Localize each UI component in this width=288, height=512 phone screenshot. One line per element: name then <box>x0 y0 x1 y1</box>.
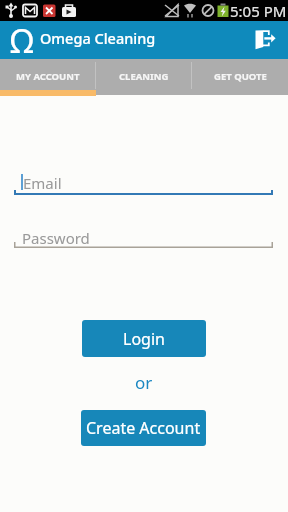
button[interactable]: Create Account <box>81 410 206 446</box>
button[interactable]: MY ACCOUNT <box>0 59 96 94</box>
button[interactable]: CLEANING <box>96 59 192 94</box>
button[interactable] <box>255 30 276 51</box>
staticText: GET QUOTE <box>214 70 267 83</box>
button[interactable]: GET QUOTE <box>192 59 288 94</box>
staticText: Omega Cleaning <box>40 28 156 48</box>
staticText: Login <box>123 328 165 350</box>
staticText: MY ACCOUNT <box>16 70 80 83</box>
staticText: Ω <box>10 18 34 56</box>
staticText: Email <box>23 173 62 193</box>
staticText: Create Account <box>86 417 201 439</box>
staticText: 5:05 PM <box>230 1 287 21</box>
staticText: CLEANING <box>119 70 169 83</box>
staticText: or <box>135 371 153 394</box>
staticText: Password <box>22 228 90 248</box>
button[interactable]: Login <box>82 320 206 357</box>
